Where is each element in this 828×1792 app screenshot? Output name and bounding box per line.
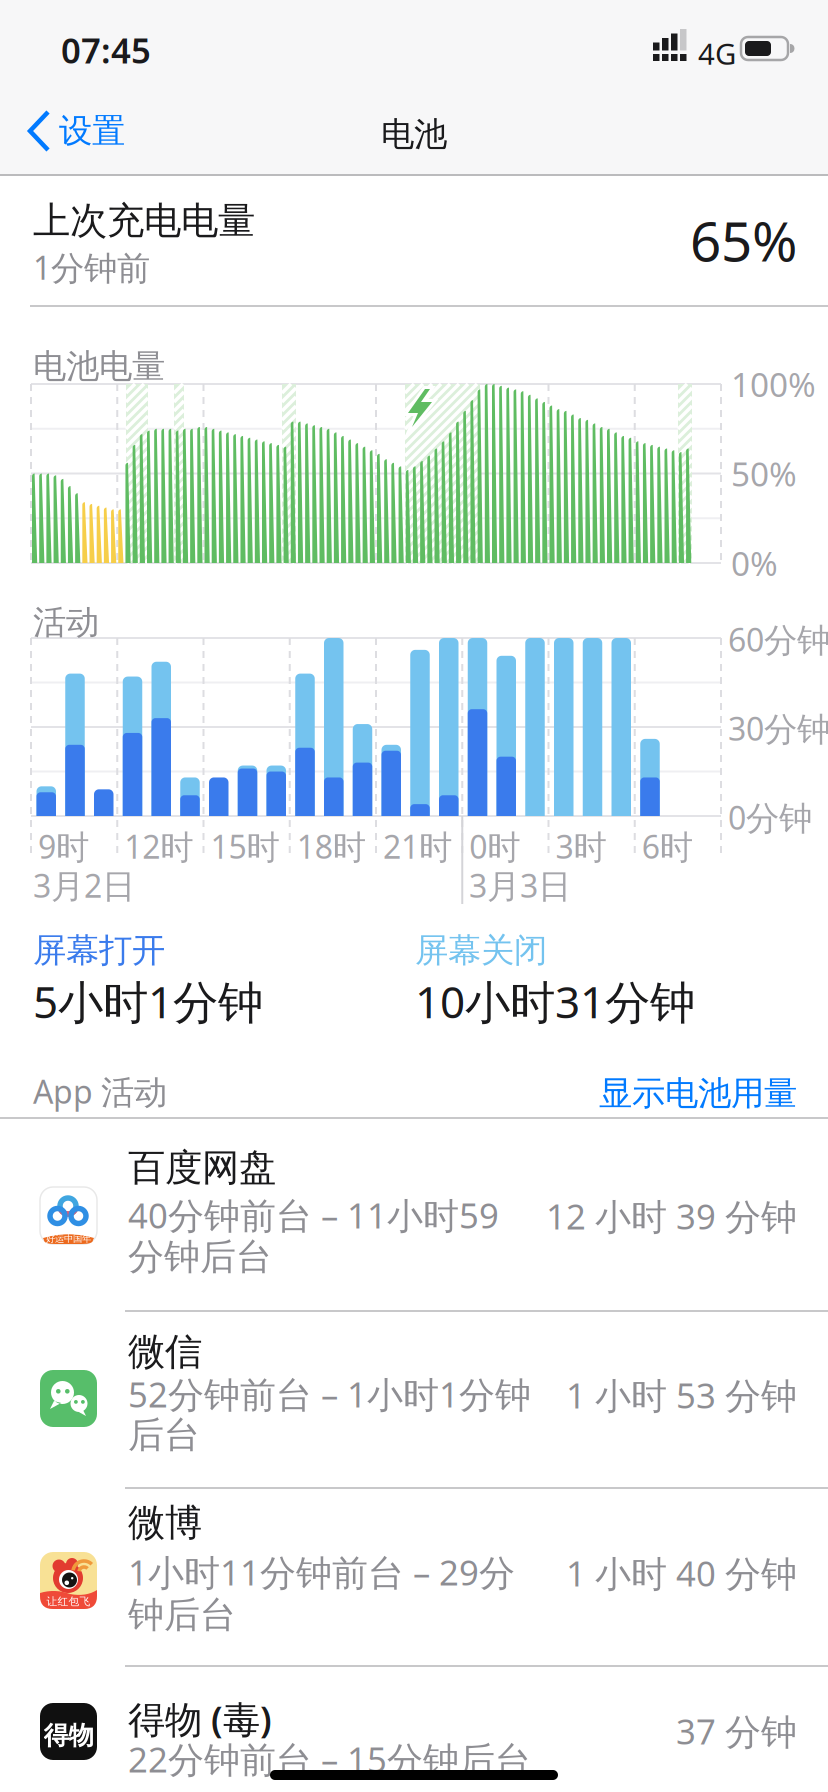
staticText: 分钟后台	[387, 1738, 531, 1783]
staticText: 3	[520, 864, 538, 906]
staticText: 1	[128, 1549, 148, 1595]
staticText: 分钟	[764, 709, 828, 750]
staticText: 15	[210, 825, 246, 867]
staticText: 60	[728, 618, 764, 660]
button[interactable]: 显示电池用量	[497, 1073, 797, 1114]
staticText: 40	[128, 1192, 168, 1238]
button[interactable]: 让红包飞	[0, 1500, 828, 1676]
staticText: 3	[33, 864, 51, 906]
staticText: 3	[555, 825, 573, 867]
staticText: 电池	[381, 114, 447, 155]
button[interactable]: 得物	[0, 1695, 828, 1792]
staticText: 50%	[731, 451, 797, 496]
staticText: 59	[459, 1192, 499, 1238]
staticText: – 1	[312, 1371, 367, 1417]
staticText: 分	[479, 1551, 515, 1596]
staticText: 得物	[128, 1697, 202, 1743]
staticText: 1	[33, 246, 51, 288]
staticText: 65%	[690, 204, 797, 277]
staticText: 小时	[148, 1551, 220, 1596]
staticText: 12	[124, 825, 160, 867]
staticText: 显示电池用量	[599, 1073, 797, 1114]
staticText: 月	[487, 866, 520, 907]
staticText: 小时	[367, 1373, 439, 1418]
staticText: 微博	[128, 1500, 202, 1546]
staticText: 分钟	[605, 975, 695, 1031]
staticText: 1	[439, 1371, 459, 1417]
staticText: 分钟	[173, 975, 263, 1031]
staticText: 分钟前台	[168, 1373, 312, 1418]
staticText: 9	[38, 825, 56, 867]
staticText: 时	[333, 827, 366, 868]
staticText: (	[202, 1695, 223, 1743]
staticText: 分钟	[725, 1552, 797, 1597]
staticText: 分钟后台	[128, 1235, 272, 1279]
staticText: 30	[728, 707, 764, 749]
button[interactable]: 微信	[0, 1329, 828, 1505]
staticText: – 29	[404, 1549, 479, 1595]
staticText: 分钟	[725, 1195, 797, 1240]
staticText: 3	[469, 864, 487, 906]
staticText: 1	[148, 972, 173, 1030]
staticText: 37	[676, 1708, 725, 1754]
staticText: 分钟前台	[260, 1551, 404, 1596]
staticText: 屏幕关闭	[415, 930, 547, 971]
staticText: 小时	[58, 975, 148, 1031]
staticText: 时	[660, 827, 693, 868]
staticText: 设置	[59, 110, 125, 151]
staticText: – 15	[312, 1736, 387, 1782]
staticText: 小时	[387, 1194, 459, 1239]
staticText: 月	[51, 866, 84, 907]
staticText: 40	[667, 1550, 725, 1596]
staticText: 好运中国年	[46, 1233, 91, 1244]
staticText: 0%	[731, 541, 778, 585]
staticText: App	[33, 1070, 101, 1112]
staticText: 分钟	[459, 1373, 531, 1418]
staticText: 07:45	[61, 27, 151, 73]
staticText: 上次充电电量	[33, 198, 255, 244]
staticText: 分钟	[725, 1710, 797, 1755]
staticText: 时	[246, 827, 279, 868]
button[interactable]: 返回设置	[27, 110, 125, 152]
staticText: 电池电量	[33, 346, 165, 387]
staticText: )	[260, 1695, 272, 1743]
staticText: 21	[383, 825, 419, 867]
staticText: 53	[667, 1372, 725, 1418]
staticText: 小时	[595, 1374, 667, 1419]
staticText: 时	[573, 827, 606, 868]
staticText: 4G	[698, 34, 736, 73]
staticText: 毒	[223, 1697, 260, 1743]
staticText: 6	[642, 825, 660, 867]
staticText: 日	[538, 866, 571, 907]
staticText: 小时	[595, 1195, 667, 1240]
staticText: 1	[566, 1372, 595, 1418]
staticText: 分钟前	[51, 248, 150, 289]
staticText: 18	[297, 825, 333, 867]
staticText: 时	[56, 827, 89, 868]
staticText: 分钟	[746, 798, 812, 839]
staticText: 52	[128, 1371, 168, 1417]
button[interactable]: 好运中国年	[0, 1145, 828, 1321]
staticText: 10	[415, 972, 465, 1030]
staticText: 1	[566, 1550, 595, 1596]
staticText: 39	[667, 1193, 725, 1239]
staticText: 屏幕打开	[33, 930, 165, 971]
staticText: 得物	[43, 1720, 93, 1751]
staticText: 31	[555, 972, 605, 1030]
staticText: 分钟	[764, 620, 828, 661]
staticText: 12	[546, 1193, 595, 1239]
staticText: 22	[128, 1736, 168, 1782]
staticText: 小时	[595, 1552, 667, 1597]
staticText: 钟后台	[128, 1593, 236, 1637]
staticText: 0	[728, 796, 746, 838]
staticText: 时	[160, 827, 193, 868]
staticText: 时	[419, 827, 452, 868]
staticText: – 11	[312, 1192, 387, 1238]
staticText: 分钟	[725, 1374, 797, 1419]
staticText: 100%	[731, 362, 816, 406]
staticText: 百度网盘	[128, 1145, 276, 1191]
staticText: 让红包飞	[46, 1595, 90, 1608]
staticText: 5	[33, 972, 58, 1030]
staticText: 时	[487, 827, 520, 868]
staticText: 小时	[465, 975, 555, 1031]
